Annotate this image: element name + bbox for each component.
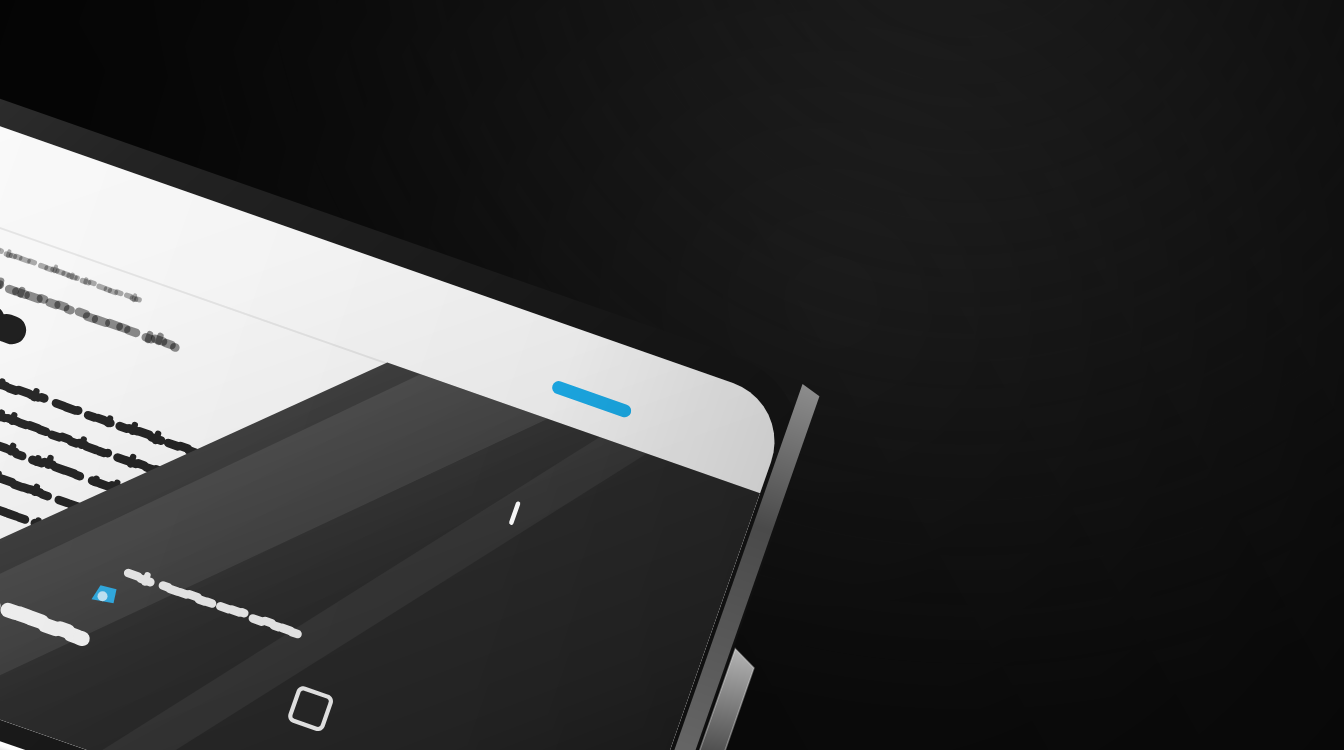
other: Smartphone product render bbox=[0, 0, 1344, 750]
